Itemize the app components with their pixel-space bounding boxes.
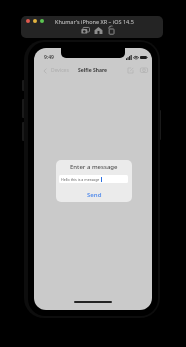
button[interactable]: Camera <box>140 66 148 74</box>
staticText: Enter a message <box>70 163 118 171</box>
staticText: Send <box>87 191 102 199</box>
staticText: 9:49 <box>44 54 54 61</box>
staticText: Khumar's iPhone XR – iOS 14.5 <box>55 18 134 25</box>
button[interactable]: Devices <box>43 67 69 74</box>
button[interactable]: Home <box>94 26 103 35</box>
staticText: Hello this is a message <box>61 177 100 182</box>
button[interactable]: Send <box>87 191 102 199</box>
button[interactable]: Screenshot <box>81 26 90 35</box>
button[interactable]: Compose <box>127 67 134 74</box>
button[interactable]: Rotate <box>107 26 116 35</box>
staticText: Devices <box>51 67 69 74</box>
staticText: Selfie Share <box>78 67 108 74</box>
